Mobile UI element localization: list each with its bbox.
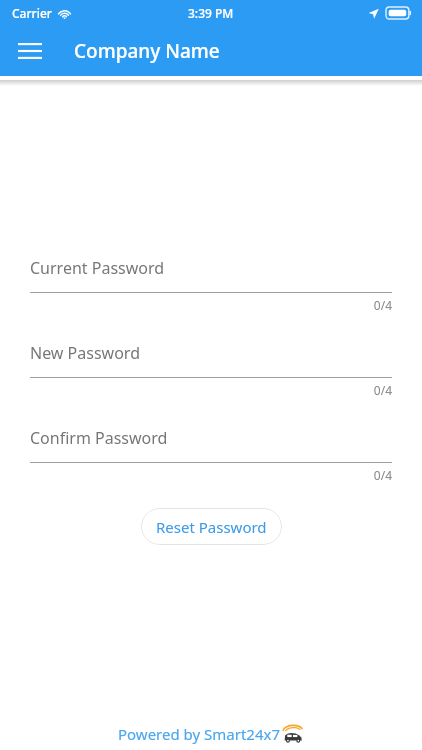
button[interactable]: New Password (30, 342, 392, 398)
button[interactable]: Current Password (30, 257, 392, 313)
staticText: Current Password (30, 257, 165, 279)
staticText: Company Name (74, 38, 220, 64)
button[interactable]: Powered by Smart24x7 (0, 724, 422, 744)
staticText: 0/4 (30, 382, 392, 398)
staticText: Reset Password (156, 517, 267, 537)
staticText: 0/4 (30, 297, 392, 313)
staticText: Carrier (12, 5, 52, 21)
staticText: Confirm Password (30, 427, 168, 449)
staticText: New Password (30, 342, 140, 364)
staticText: Powered by Smart24x7 (118, 724, 281, 744)
button[interactable]: Open navigation menu (12, 33, 48, 69)
staticText: 0/4 (30, 467, 392, 483)
button[interactable]: Confirm Password (30, 427, 392, 483)
button[interactable]: Reset Password (141, 508, 282, 545)
staticText: 3:39 PM (188, 5, 234, 21)
